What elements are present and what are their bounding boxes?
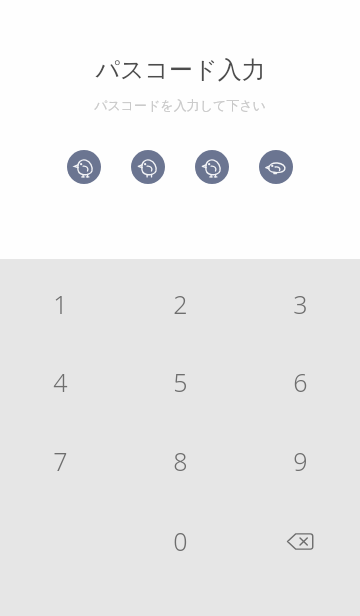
button[interactable]: 0 (120, 501, 240, 581)
staticText: 1 (53, 287, 68, 321)
button[interactable]: 2 (120, 265, 240, 343)
staticText: 8 (173, 444, 188, 478)
staticText: パスコード入力 (95, 55, 266, 85)
button[interactable]: 6 (240, 343, 360, 421)
button[interactable]: 1 (0, 265, 120, 343)
button[interactable]: Passcode digit 2 (131, 150, 165, 184)
staticText: 7 (53, 444, 68, 478)
staticText: 5 (173, 365, 188, 399)
button[interactable]: Delete (240, 501, 360, 581)
staticText: 6 (293, 365, 308, 399)
button[interactable]: Passcode digit 1 (67, 150, 101, 184)
button[interactable]: 3 (240, 265, 360, 343)
staticText: 4 (53, 365, 68, 399)
button[interactable]: 7 (0, 421, 120, 501)
staticText: 2 (173, 287, 188, 321)
button[interactable]: 5 (120, 343, 240, 421)
staticText: 9 (293, 444, 308, 478)
button[interactable]: 4 (0, 343, 120, 421)
staticText: 0 (173, 524, 188, 558)
staticText: 3 (293, 287, 308, 321)
button[interactable]: 9 (240, 421, 360, 501)
button[interactable]: Passcode digit 3 (195, 150, 229, 184)
button[interactable]: 8 (120, 421, 240, 501)
button[interactable]: Passcode digit 4 (259, 150, 293, 184)
staticText: パスコードを入力して下さい (94, 97, 266, 113)
